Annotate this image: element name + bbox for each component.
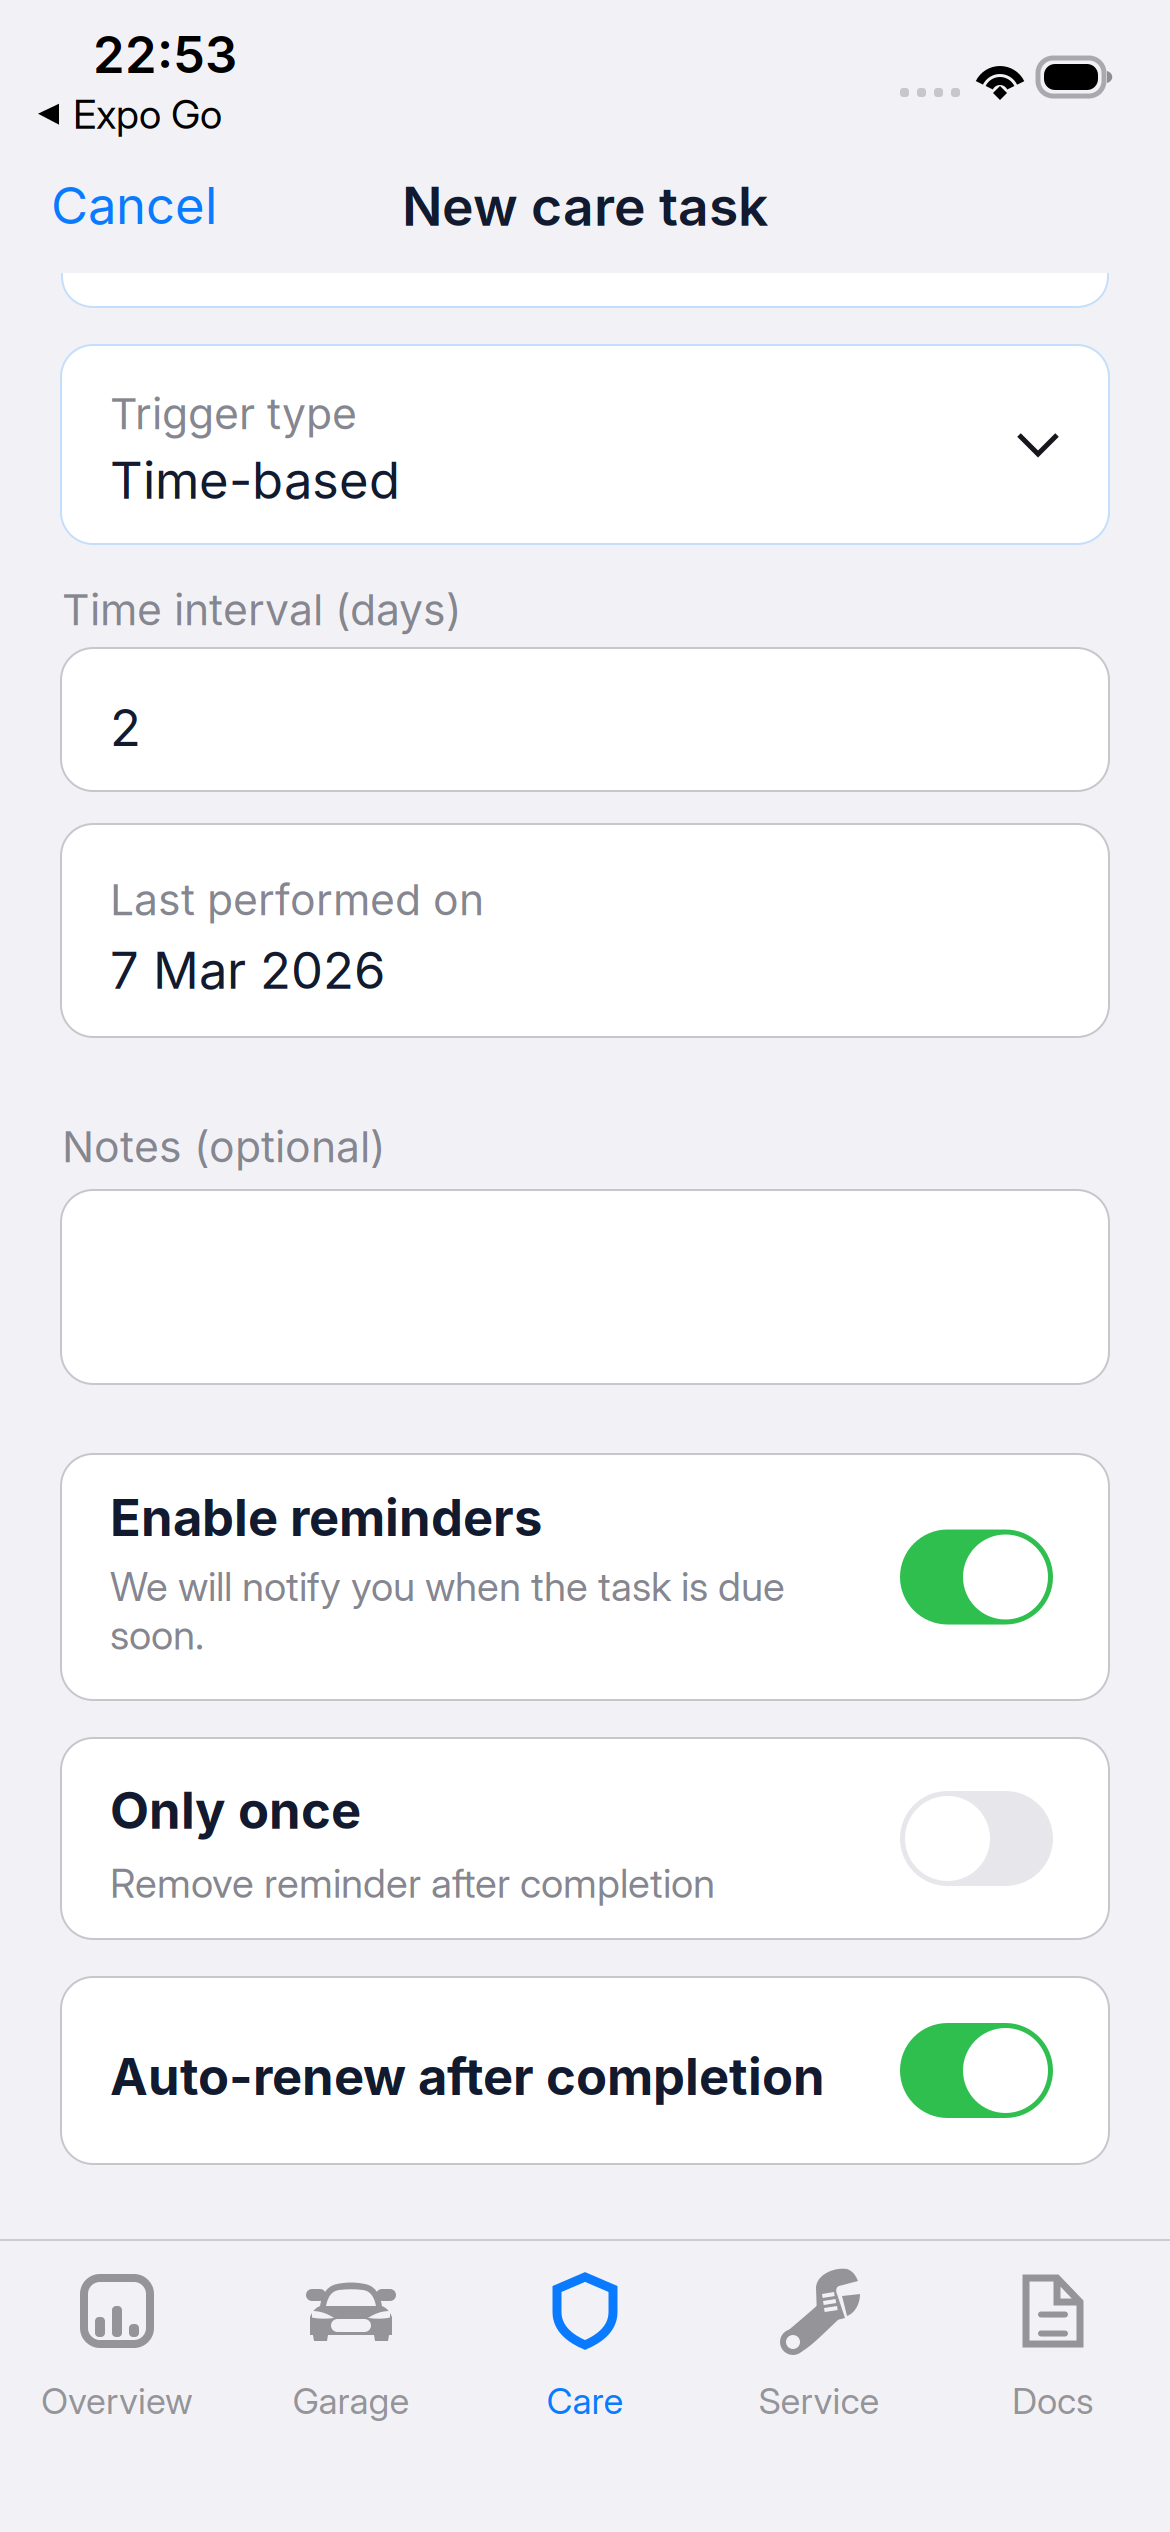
button[interactable]: Auto-renew after completion	[61, 1977, 1109, 2164]
staticText: Service	[758, 2379, 879, 2423]
button[interactable]: Overview	[0, 2241, 234, 2451]
staticText: Time-based	[110, 450, 400, 511]
button[interactable]: Only once	[61, 1738, 1109, 1939]
button[interactable]: Cancel	[37, 157, 231, 254]
button[interactable]: Last performed on	[61, 824, 1109, 1037]
staticText: Last performed on	[110, 874, 484, 926]
staticText: Only once	[110, 1780, 361, 1841]
staticText: Trigger type	[110, 388, 357, 440]
staticText: Notes (optional)	[62, 1121, 386, 1173]
staticText: 22:53	[93, 24, 237, 85]
staticText: Docs	[1012, 2379, 1094, 2423]
staticText: Time interval (days)	[62, 584, 462, 636]
staticText: Garage	[292, 2379, 409, 2423]
button[interactable]: Service	[702, 2241, 936, 2451]
staticText: Auto-renew after completion	[110, 2046, 825, 2107]
staticText: Cancel	[51, 175, 217, 236]
button[interactable]: Enable reminders	[61, 1454, 1109, 1700]
button[interactable]: Trigger type	[61, 345, 1109, 544]
staticText: New care task	[402, 174, 768, 238]
staticText: Overview	[41, 2379, 193, 2423]
staticText: Care	[546, 2379, 623, 2423]
button[interactable]: Care	[468, 2241, 702, 2451]
button[interactable]: Garage	[234, 2241, 468, 2451]
staticText: Enable reminders	[110, 1487, 542, 1548]
staticText: We will notify you when the task is due …	[110, 1562, 785, 1659]
staticText: 7 Mar 2026	[110, 940, 385, 1001]
button[interactable]: Docs	[936, 2241, 1170, 2451]
staticText: 2	[110, 697, 141, 758]
staticText: Expo Go	[73, 90, 222, 138]
staticText: Remove reminder after completion	[110, 1859, 715, 1907]
